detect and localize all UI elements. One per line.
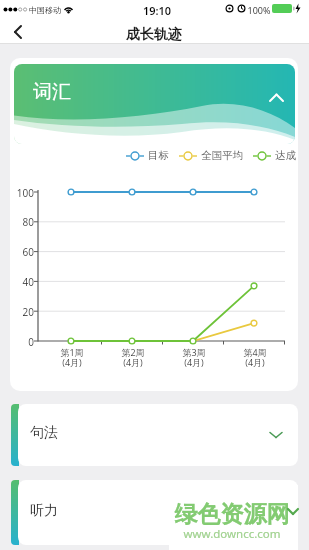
staticText: 19:10 xyxy=(137,3,177,17)
staticText: 20 xyxy=(8,305,34,318)
staticText: 第3周 (4月) xyxy=(174,346,214,368)
staticText: 40 xyxy=(8,275,34,288)
staticText: 绿色资源网 xyxy=(172,500,292,526)
staticText: 听力 xyxy=(30,502,58,520)
button[interactable]: 句法 xyxy=(18,404,298,466)
staticText: 第2周 (4月) xyxy=(113,346,153,368)
button[interactable] xyxy=(6,22,34,44)
button[interactable]: 听力 xyxy=(18,480,298,545)
staticText: 中国移动 xyxy=(27,5,63,15)
staticText: 句法 xyxy=(30,424,58,442)
staticText: 目标 xyxy=(148,149,169,162)
staticText: 成长轨迹 xyxy=(104,26,204,44)
button[interactable] xyxy=(14,64,295,144)
staticText: 60 xyxy=(8,245,34,258)
staticText: 第4周 (4月) xyxy=(235,346,275,368)
staticText: 100 xyxy=(8,186,34,199)
staticText: 全国平均 xyxy=(201,149,243,162)
staticText: 0 xyxy=(8,335,34,348)
staticText: 100% xyxy=(246,4,272,16)
staticText: 80 xyxy=(8,215,34,228)
staticText: 达成 xyxy=(275,149,296,162)
staticText: www.downcc.com xyxy=(170,526,294,542)
staticText: 词汇 xyxy=(33,80,93,102)
staticText: 第1周 (4月) xyxy=(52,346,92,368)
